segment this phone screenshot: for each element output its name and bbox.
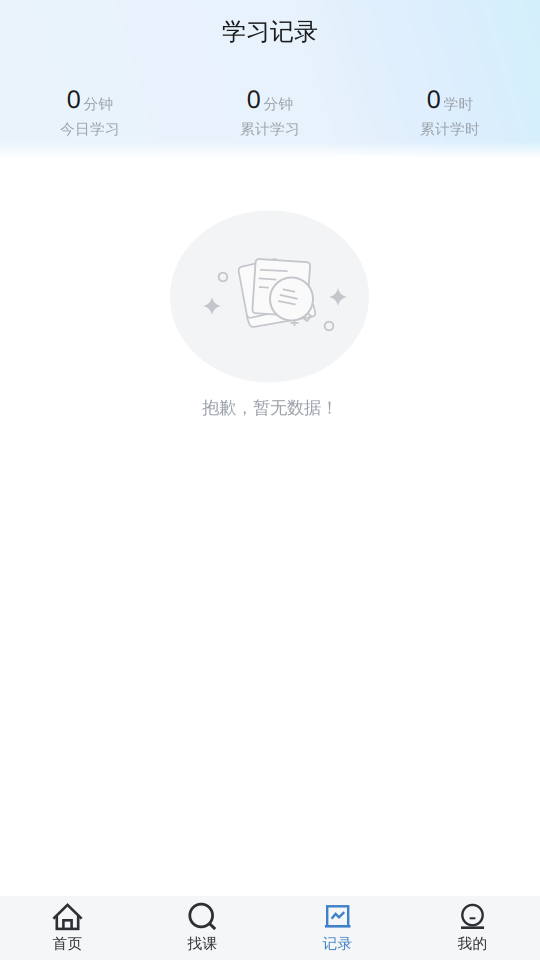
staticText: 累计学习 <box>240 120 300 138</box>
staticText: 抱歉，暂无数据！ <box>202 397 338 418</box>
staticText: 记录 <box>322 934 352 952</box>
staticText: 分钟 <box>83 95 113 113</box>
button[interactable]: 我的 <box>405 894 540 960</box>
staticText: 我的 <box>457 934 487 952</box>
staticText: 今日学习 <box>60 120 120 138</box>
staticText: 分钟 <box>263 95 293 113</box>
staticText: 学习记录 <box>222 17 318 46</box>
staticText: 0 <box>246 81 260 115</box>
button[interactable]: 记录 <box>270 894 405 960</box>
staticText: 首页 <box>52 934 82 952</box>
button[interactable]: 找课 <box>135 894 270 960</box>
staticText: 学时 <box>443 95 473 113</box>
staticText: 累计学时 <box>420 120 480 138</box>
staticText: 0 <box>426 81 440 115</box>
staticText: 0 <box>66 81 80 115</box>
staticText: 找课 <box>187 934 217 952</box>
button[interactable]: 首页 <box>0 894 135 960</box>
